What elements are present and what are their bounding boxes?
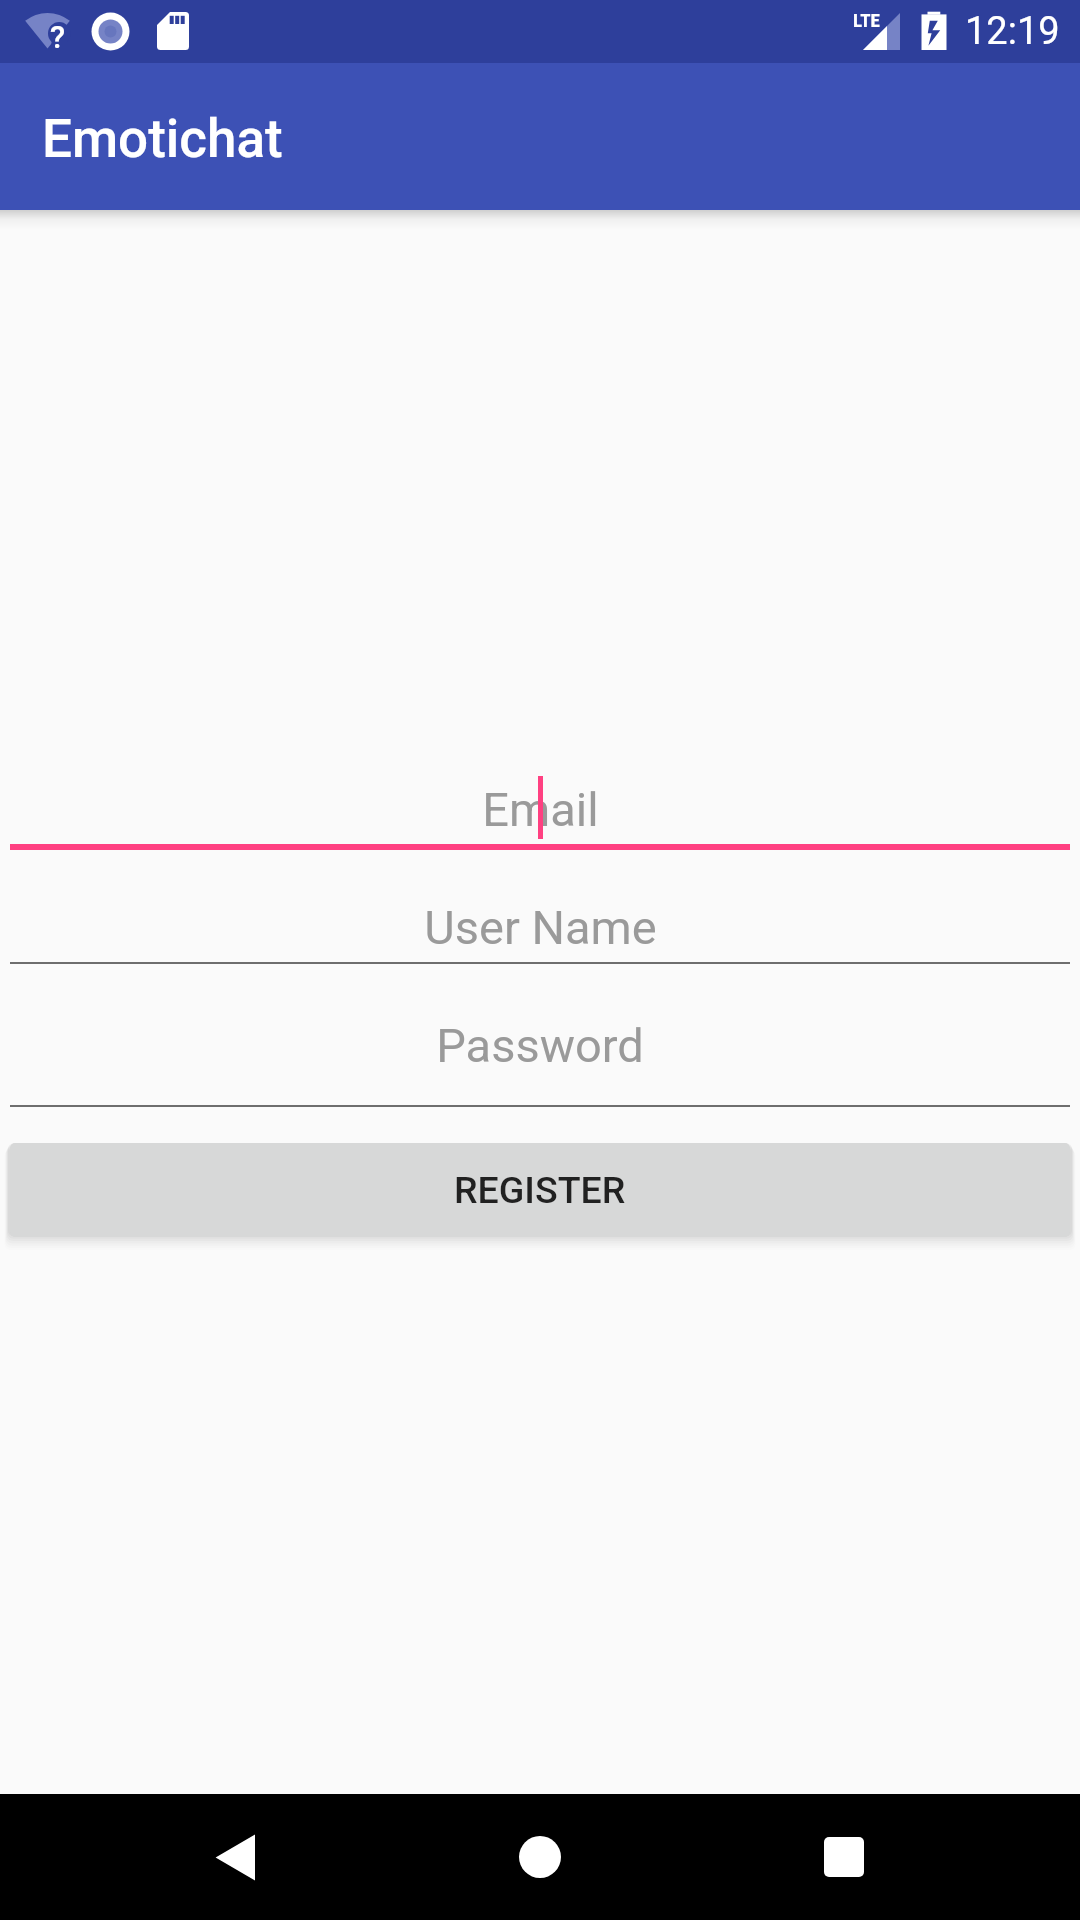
button[interactable]: Recent apps xyxy=(764,1794,924,1920)
staticText: ? xyxy=(50,19,66,55)
staticText: LTE xyxy=(853,9,880,31)
staticText: User Name xyxy=(424,900,657,955)
staticText: 12:19 xyxy=(965,9,1060,54)
button[interactable]: Email xyxy=(0,762,1080,849)
button[interactable]: Password xyxy=(0,998,1080,1107)
staticText: Emotichat xyxy=(42,108,283,170)
staticText: REGISTER xyxy=(454,1168,626,1212)
button[interactable]: Back xyxy=(156,1794,316,1920)
button[interactable]: Home xyxy=(460,1794,620,1920)
button[interactable]: User Name xyxy=(0,880,1080,965)
button[interactable]: REGISTER xyxy=(10,1143,1070,1237)
staticText: Password xyxy=(436,1018,644,1073)
staticText: Email xyxy=(482,782,599,837)
